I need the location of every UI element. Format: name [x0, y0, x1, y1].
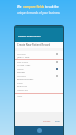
staticText: 12 Mar 1987 — [17, 64, 31, 67]
staticText: Full name — [17, 53, 26, 56]
staticText: Notes — [17, 95, 23, 98]
staticText: Jane A. Doe — [17, 56, 30, 59]
button[interactable]: CANCEL — [42, 119, 52, 124]
staticText: Gender — [17, 68, 24, 71]
staticText: Phone — [17, 82, 23, 85]
staticText: to suit the — [45, 5, 59, 9]
staticText: Date of birth — [17, 61, 29, 64]
staticText: Insurance — [17, 75, 26, 78]
staticText: Female — [17, 71, 25, 74]
button[interactable]: SAVE — [54, 119, 61, 124]
staticText: Address line — [17, 89, 28, 92]
staticText: CANCEL — [43, 120, 51, 123]
staticText: Patient Registration — [18, 34, 41, 37]
staticText: compare fields — [23, 5, 45, 9]
staticText: SAVE — [55, 120, 60, 123]
staticText: We — [17, 5, 23, 9]
staticText: 555 0134 — [17, 85, 27, 88]
staticText: unique demands of your business — [17, 11, 60, 15]
staticText: Create New Patient Record — [17, 43, 51, 47]
staticText: BlueCross 8891 — [17, 78, 34, 81]
